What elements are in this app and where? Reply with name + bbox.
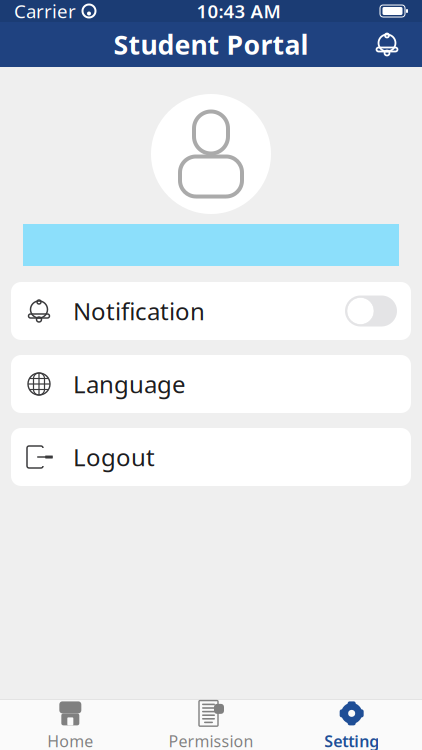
staticText: Student Portal bbox=[113, 27, 308, 62]
button[interactable]: Logout bbox=[11, 428, 411, 486]
staticText: Carrier bbox=[14, 0, 76, 23]
staticText: Setting bbox=[324, 730, 379, 750]
button[interactable]: Notification bbox=[11, 282, 411, 340]
button[interactable]: Home bbox=[0, 692, 141, 750]
button[interactable]: Language bbox=[11, 355, 411, 413]
button[interactable]: Notifications bbox=[364, 24, 410, 64]
staticText: 10:43 AM bbox=[196, 0, 280, 23]
button[interactable]: Setting bbox=[281, 692, 422, 750]
button[interactable]: Permission bbox=[141, 692, 281, 750]
staticText: Logout bbox=[73, 441, 155, 473]
staticText: Home bbox=[47, 730, 93, 750]
staticText: Permission bbox=[168, 730, 253, 750]
staticText: Notification bbox=[73, 295, 205, 327]
staticText: Language bbox=[73, 368, 186, 400]
